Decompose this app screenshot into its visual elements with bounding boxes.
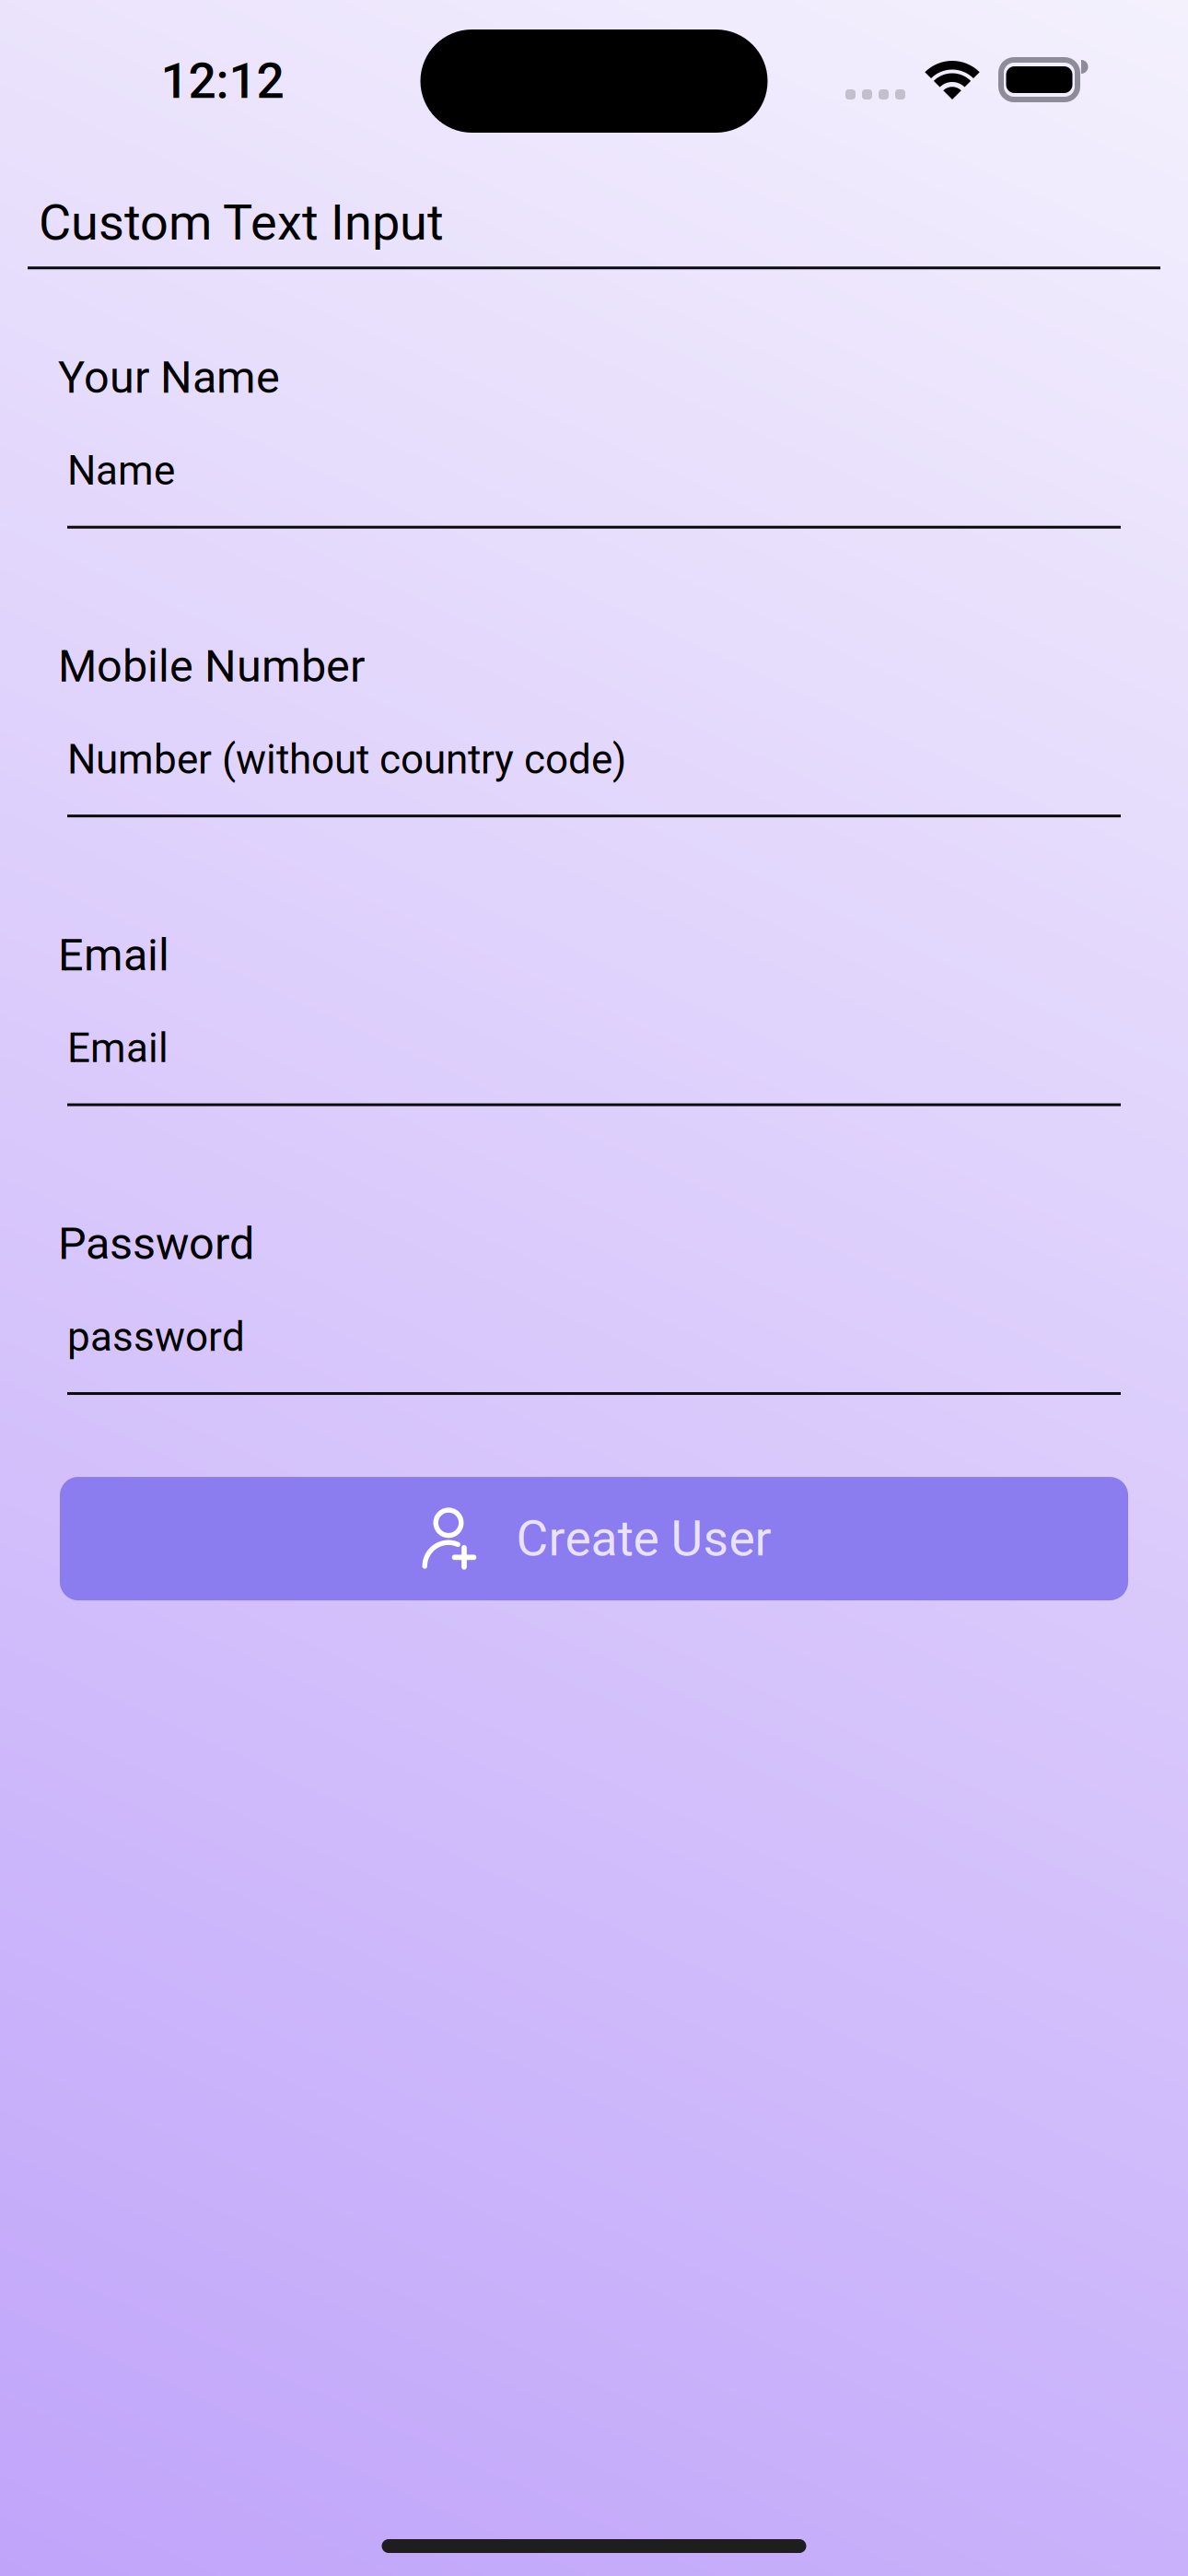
staticText: Custom Text Input [39, 193, 444, 252]
button[interactable]: Email [0, 1025, 1188, 1106]
staticText: Name [67, 447, 175, 495]
staticText: Mobile Number [58, 640, 365, 692]
staticText: Create User [516, 1510, 771, 1567]
button[interactable]: Password [0, 1313, 1188, 1395]
staticText: Email [58, 929, 169, 981]
staticText: Your Name [58, 351, 280, 404]
button[interactable]: Mobile Number [0, 736, 1188, 817]
staticText: 12:12 [161, 52, 284, 110]
button[interactable]: Your Name [0, 447, 1188, 529]
staticText: Email [67, 1025, 169, 1072]
staticText: Password [58, 1218, 254, 1270]
staticText: password [67, 1313, 245, 1361]
button[interactable]: Create User [60, 1477, 1128, 1600]
staticText: Number (without country code) [67, 736, 626, 783]
